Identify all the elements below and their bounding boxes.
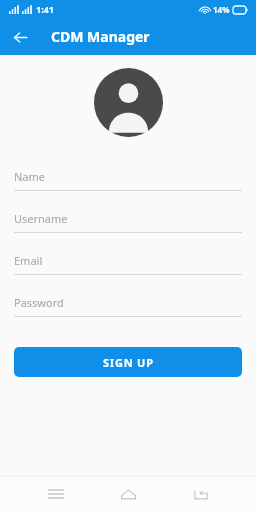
button[interactable]: Home [111, 477, 145, 511]
staticText: Password [14, 295, 64, 310]
button[interactable]: Navigate up [7, 24, 33, 50]
button[interactable]: Username [14, 203, 242, 245]
button[interactable]: Password [14, 287, 242, 329]
staticText: CDM Manager [51, 27, 150, 46]
button[interactable]: SIGN UP [14, 347, 242, 377]
button[interactable]: Name [14, 161, 242, 203]
button[interactable]: Recent apps [39, 477, 73, 511]
staticText: 1:41 [36, 3, 54, 15]
button[interactable]: Email [14, 245, 242, 287]
staticText: Name [14, 169, 46, 184]
staticText: Username [14, 211, 68, 226]
staticText: SIGN UP [103, 355, 154, 370]
staticText: Email [14, 253, 43, 268]
staticText: 14% [213, 4, 230, 15]
button[interactable]: Back [184, 477, 218, 511]
